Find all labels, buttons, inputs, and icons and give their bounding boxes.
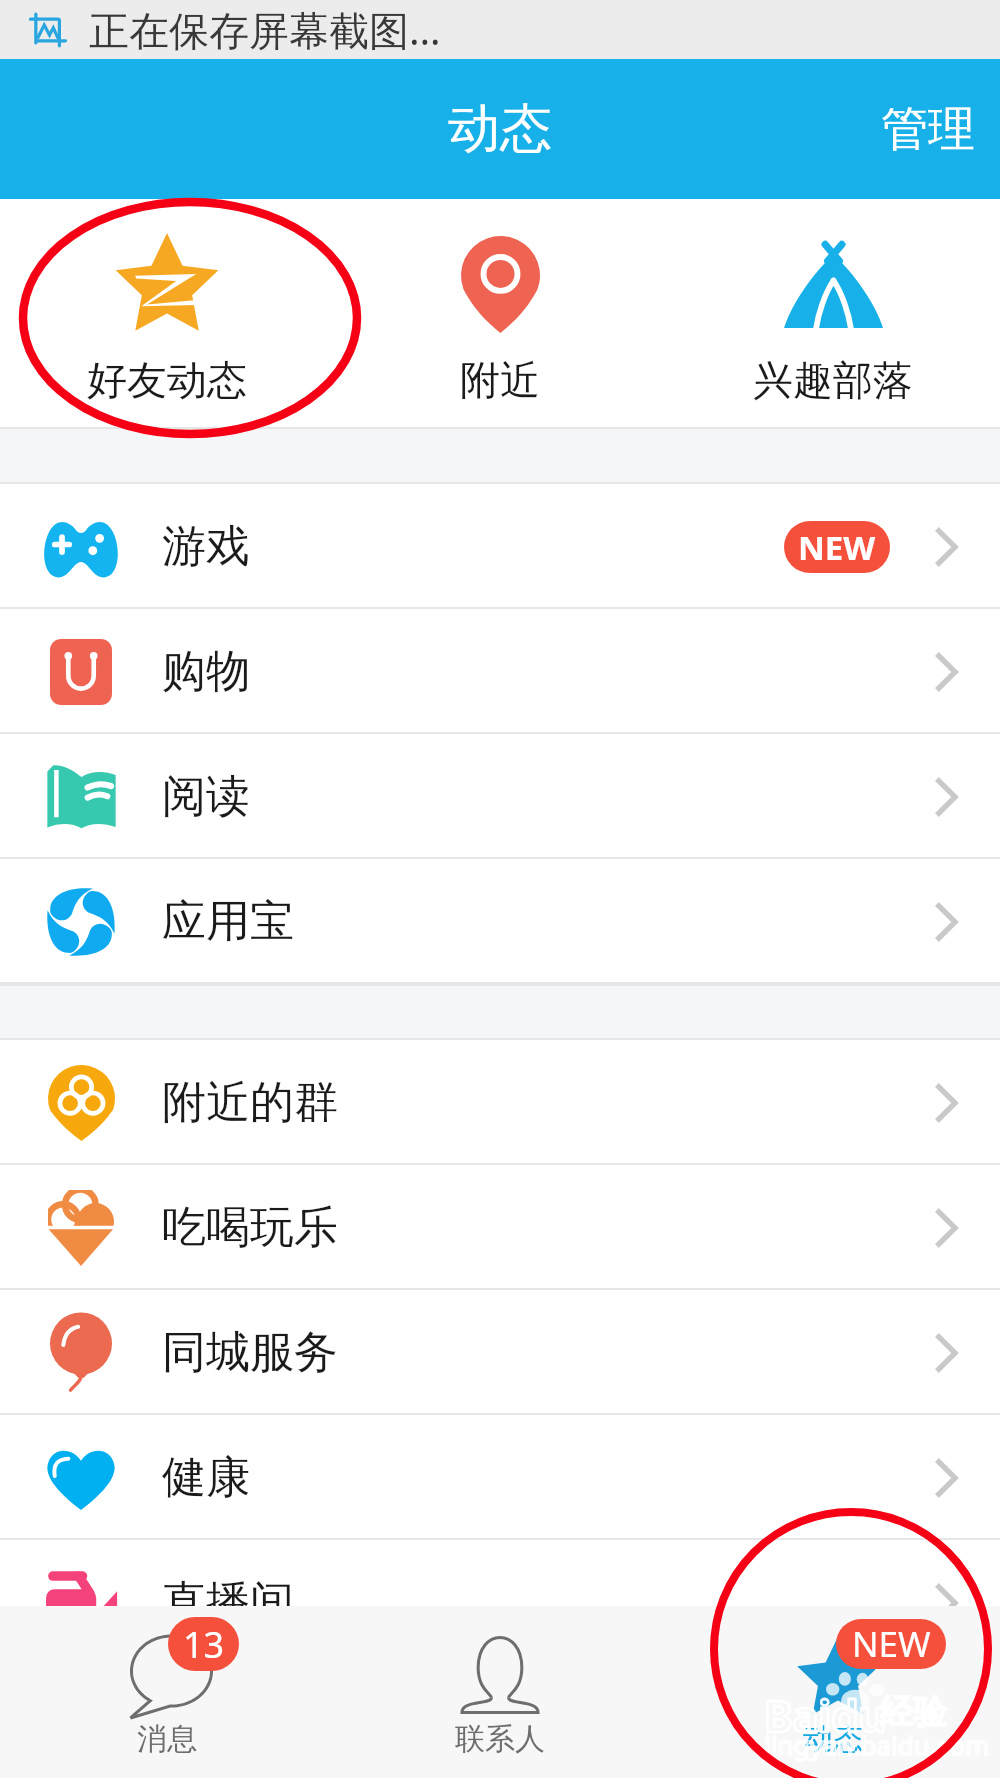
staticText: 正在保存屏幕截图… (89, 2, 441, 57)
button[interactable]: 同城服务 (0, 1290, 1000, 1415)
staticText: NEW (798, 525, 876, 570)
staticText: 应用宝 (162, 894, 294, 949)
staticText: NEW (852, 1620, 931, 1668)
button[interactable]: 管理 (855, 59, 1000, 199)
staticText: 兴趣部落 (753, 355, 913, 405)
button[interactable]: 13 (0, 1606, 333, 1778)
button[interactable]: 应用宝 (0, 859, 1000, 984)
button[interactable]: 阅读 (0, 734, 1000, 859)
staticText: 同城服务 (162, 1325, 338, 1380)
staticText: 阅读 (162, 769, 250, 824)
button[interactable]: 兴趣部落 (666, 199, 999, 427)
button[interactable]: 吃喝玩乐 (0, 1165, 1000, 1290)
staticText: 经验 (880, 1690, 948, 1733)
staticText: 吃喝玩乐 (162, 1200, 338, 1255)
staticText: 动态 (448, 96, 552, 162)
staticText: 游戏 (162, 519, 250, 574)
button[interactable]: 购物 (0, 609, 1000, 734)
staticText: 好友动态 (87, 355, 247, 405)
button[interactable]: 直播间 (0, 1540, 1000, 1665)
staticText: 动态 (803, 1720, 863, 1758)
button[interactable]: NEW (666, 1606, 999, 1778)
staticText: 健康 (162, 1450, 250, 1505)
staticText: jingyan.baidu.com (764, 1727, 990, 1762)
staticText: 附近的群 (162, 1075, 338, 1130)
staticText: 附近 (460, 355, 540, 405)
button[interactable]: 附近的群 (0, 1040, 1000, 1165)
staticText: 13 (183, 1620, 225, 1669)
staticText: 管理 (881, 100, 975, 159)
button[interactable]: 附近 (333, 199, 666, 427)
staticText: Baidu (764, 1686, 887, 1745)
staticText: 直播间 (162, 1575, 294, 1630)
staticText: 消息 (137, 1720, 197, 1758)
button[interactable]: 健康 (0, 1415, 1000, 1540)
button[interactable]: 好友动态 (0, 199, 333, 427)
button[interactable]: 联系人 (333, 1606, 666, 1778)
staticText: 购物 (162, 644, 250, 699)
button[interactable]: 游戏 (0, 484, 1000, 609)
staticText: 联系人 (455, 1720, 545, 1758)
